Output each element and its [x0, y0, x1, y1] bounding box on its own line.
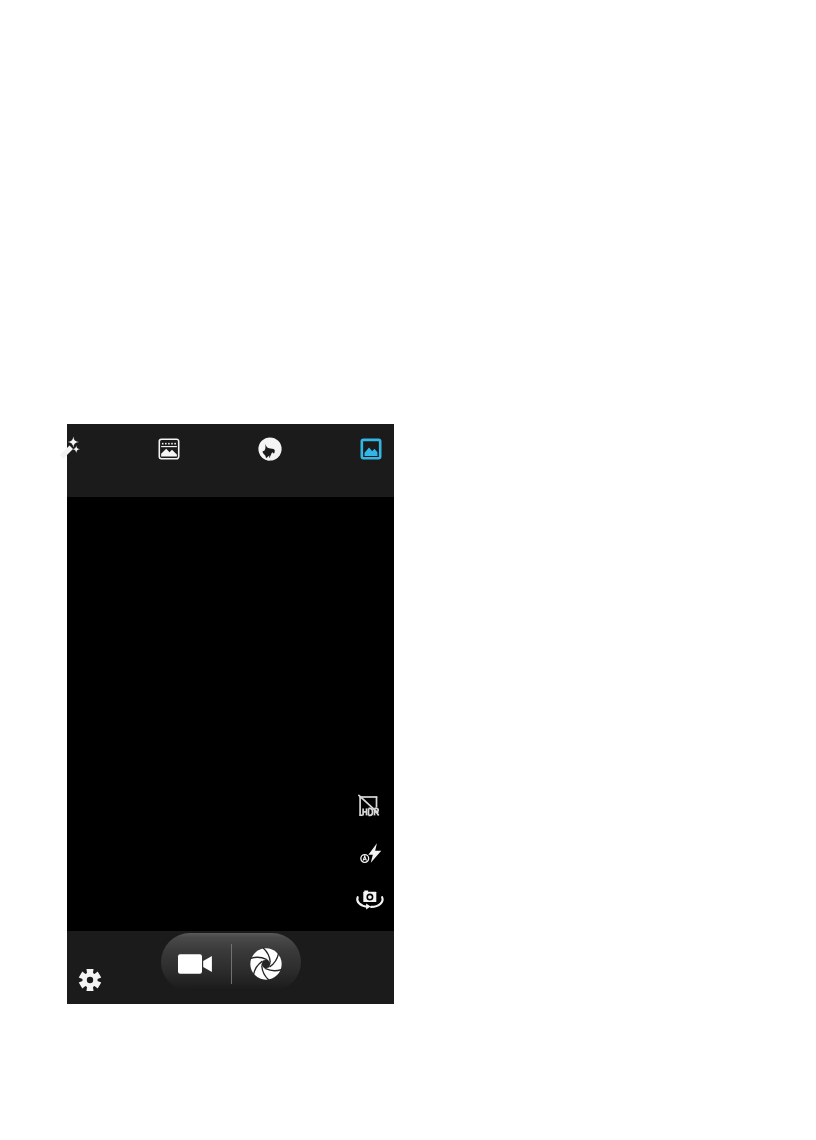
button[interactable]: HDR off — [348, 784, 392, 828]
button[interactable]: Flash auto — [349, 831, 393, 875]
button[interactable]: Photo — [351, 429, 391, 469]
button[interactable]: Settings — [68, 958, 112, 1002]
button[interactable]: Photo Sphere — [250, 429, 290, 469]
button[interactable]: Take photo — [231, 935, 300, 991]
button[interactable]: Panorama — [149, 429, 189, 469]
button[interactable]: Switch camera — [348, 878, 392, 922]
button[interactable]: Record video — [161, 935, 229, 991]
button[interactable]: Auto enhance — [48, 426, 94, 472]
